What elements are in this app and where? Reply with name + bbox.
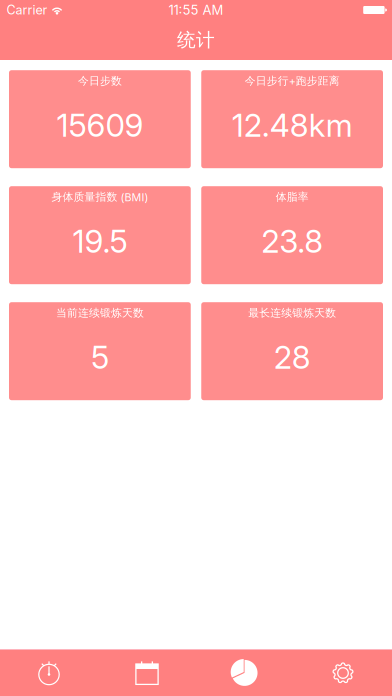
button[interactable]: 最长连续锻炼天数 [201,302,383,400]
staticText: 23.8 [261,222,323,260]
staticText: 15609 [56,106,143,144]
staticText: 最长连续锻炼天数 [248,306,336,320]
staticText: 5 [91,338,109,376]
staticText: 统计 [177,28,215,52]
staticText: 11:55 AM [168,2,223,18]
button[interactable]: 体脂率 [201,186,383,284]
button[interactable]: 今日步数 [9,70,191,168]
button[interactable]: 身体质量指数 (BMI) [9,186,191,284]
button[interactable]: Statistics [196,650,294,696]
button[interactable]: 当前连续锻炼天数 [9,302,191,400]
staticText: 当前连续锻炼天数 [56,306,144,320]
button[interactable]: Settings [294,650,392,696]
button[interactable]: History [98,650,196,696]
staticText: 19.5 [72,222,127,260]
staticText: 体脂率 [276,190,309,204]
button[interactable]: 今日步行+跑步距离 [201,70,383,168]
staticText: Carrier [6,2,47,18]
staticText: 身体质量指数 (BMI) [51,190,148,204]
staticText: 今日步行+跑步距离 [245,74,340,88]
staticText: 12.48km [232,106,353,144]
staticText: 今日步数 [78,74,122,88]
button[interactable]: Timer [0,650,98,696]
staticText: 28 [274,338,311,376]
